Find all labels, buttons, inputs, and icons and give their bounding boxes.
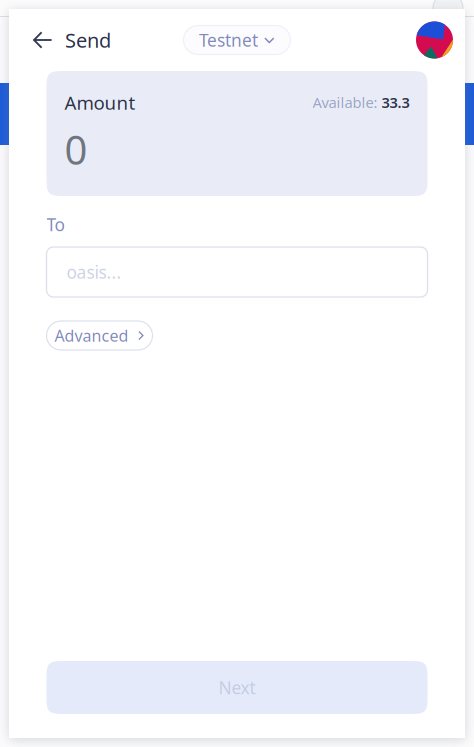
button[interactable]: Advanced <box>46 321 152 350</box>
staticText: Available: <box>312 93 381 112</box>
staticText: Send <box>65 27 111 53</box>
button[interactable]: Account <box>416 21 465 58</box>
button[interactable]: oasis... <box>46 247 427 297</box>
staticText: Next <box>218 676 255 699</box>
button[interactable]: Next <box>46 661 427 714</box>
staticText: 33.3 <box>381 93 409 112</box>
button[interactable]: Testnet <box>183 25 290 54</box>
staticText: Testnet <box>199 28 258 51</box>
staticText: oasis... <box>66 260 121 283</box>
staticText: To <box>46 213 64 236</box>
staticText: 0 <box>64 123 87 176</box>
staticText: Amount <box>64 90 135 115</box>
staticText: Advanced <box>54 325 128 346</box>
button[interactable]: Send <box>9 17 119 63</box>
